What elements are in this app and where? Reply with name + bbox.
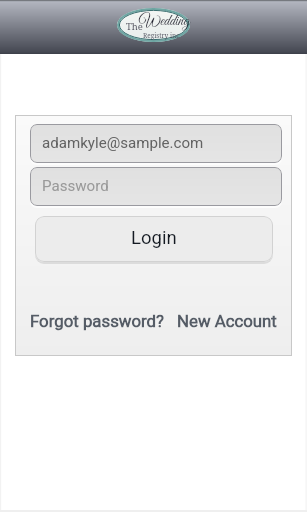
button[interactable]: Password <box>30 167 282 206</box>
staticText: adamkyle@sample.com <box>42 134 204 152</box>
other: The Wedding Registry logo <box>117 8 190 42</box>
staticText: New Account <box>177 311 277 331</box>
button[interactable]: adamkyle@sample.com <box>30 124 282 163</box>
staticText: The <box>126 20 143 33</box>
staticText: Forgot password? <box>30 311 164 331</box>
button[interactable]: Login <box>35 216 273 262</box>
staticText: Login <box>131 227 177 249</box>
button[interactable]: Forgot password? <box>30 311 164 331</box>
button[interactable]: New Account <box>177 311 277 331</box>
staticText: Registry inc <box>143 31 180 40</box>
staticText: Wedding <box>139 12 190 31</box>
staticText: Password <box>42 177 109 195</box>
